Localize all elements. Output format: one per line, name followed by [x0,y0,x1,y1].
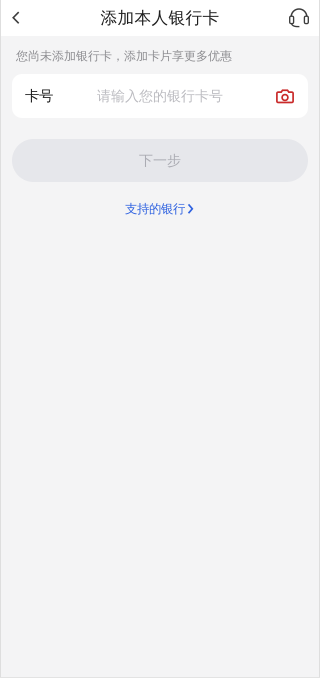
button[interactable]: 下一步 [12,139,308,182]
staticText: 下一步 [139,152,181,169]
button[interactable]: Customer service [276,0,320,36]
staticText: 添加本人银行卡 [100,7,219,28]
staticText: 卡号 [25,87,53,105]
staticText: 请输入您的银行卡号 [97,87,223,105]
button[interactable]: 卡号 [12,74,267,118]
staticText: 您尚未添加银行卡，添加卡片享更多优惠 [16,48,232,63]
staticText: 支持的银行 [125,201,185,217]
button[interactable]: Scan bank card [267,74,308,118]
button[interactable]: 支持的银行 [113,196,207,222]
button[interactable]: Back [0,0,40,36]
